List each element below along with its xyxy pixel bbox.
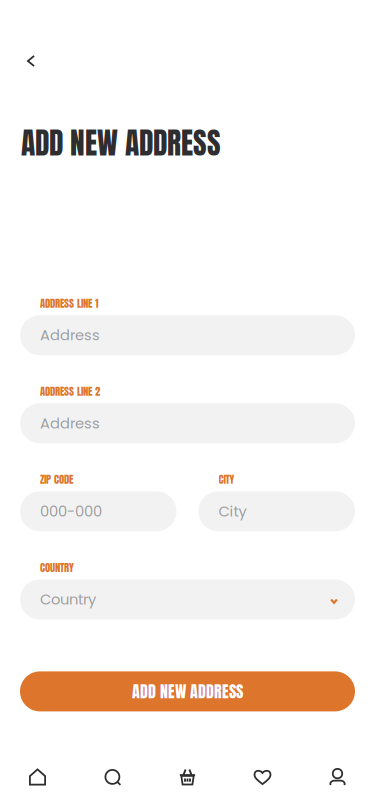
- button[interactable]: Back: [14, 44, 48, 78]
- staticText: ADD NEW ADDRESS: [21, 121, 221, 165]
- staticText: ADDRESS LINE 2: [40, 383, 100, 399]
- button[interactable]: Basket: [150, 754, 225, 800]
- staticText: Country: [40, 589, 96, 610]
- staticText: ZIP CODE: [40, 471, 73, 487]
- button[interactable]: Favorites: [225, 754, 300, 800]
- button[interactable]: Profile: [300, 754, 375, 800]
- staticText: Address: [40, 413, 100, 433]
- button[interactable]: ADD NEW ADDRESS: [20, 671, 355, 711]
- staticText: COUNTRY: [40, 559, 74, 575]
- staticText: CITY: [218, 471, 234, 487]
- staticText: 000-000: [40, 501, 102, 522]
- button[interactable]: Search: [75, 754, 150, 800]
- button[interactable]: Home: [0, 754, 75, 800]
- staticText: Address: [40, 325, 100, 345]
- staticText: City: [218, 501, 246, 522]
- staticText: ADDRESS LINE 1: [40, 295, 99, 311]
- staticText: ADD NEW ADDRESS: [132, 679, 243, 703]
